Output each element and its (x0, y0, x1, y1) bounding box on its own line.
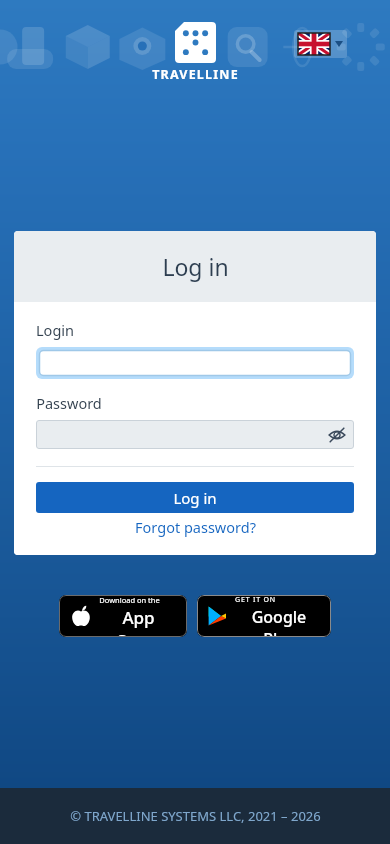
staticText: GET IT ON (235, 595, 276, 605)
staticText: App Store (99, 606, 178, 637)
staticText: Password (36, 393, 102, 413)
staticText: TRAVELLINE (152, 66, 239, 83)
button[interactable]: Show password (328, 426, 346, 444)
button[interactable]: Forgot password? (36, 517, 354, 537)
staticText: Log in (173, 488, 217, 508)
button[interactable]: Download on the App Store (59, 595, 187, 637)
button[interactable]: Login input (36, 347, 354, 379)
staticText: Login (36, 320, 74, 340)
staticText: Download on the (99, 595, 160, 605)
staticText: Log in (162, 251, 229, 282)
button[interactable]: Get it on Google Play (197, 595, 331, 637)
staticText: Google Play (235, 606, 323, 637)
button[interactable]: TravelLine home (152, 22, 239, 83)
button[interactable]: Log in (36, 482, 354, 513)
staticText: © TRAVELLINE SYSTEMS LLC, 2021 – 2026 (70, 807, 321, 825)
button[interactable]: Password input (36, 420, 354, 449)
staticText: Forgot password? (135, 517, 256, 537)
button[interactable]: Change language (298, 33, 343, 55)
